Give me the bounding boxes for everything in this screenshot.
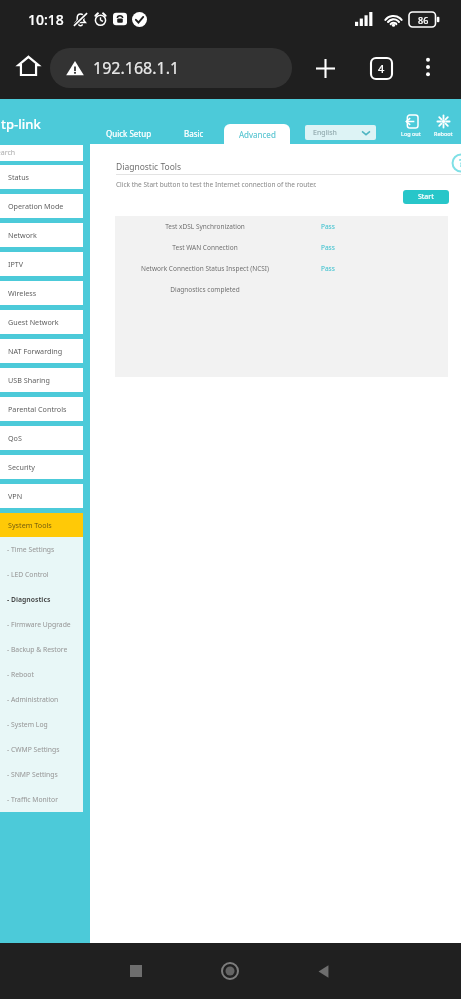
- button[interactable]: System Tools: [0, 513, 83, 537]
- button[interactable]: Basic: [178, 126, 210, 140]
- button[interactable]: Recent apps: [116, 951, 156, 991]
- staticText: Advanced: [239, 129, 276, 140]
- button[interactable]: Back: [303, 951, 343, 991]
- staticText: Pass: [321, 264, 335, 273]
- button[interactable]: Guest Network: [0, 310, 83, 334]
- staticText: Parental Controls: [8, 404, 67, 414]
- button[interactable]: - SNMP Settings: [0, 762, 83, 787]
- button[interactable]: NAT Forwarding: [0, 339, 83, 363]
- staticText: Status: [8, 172, 30, 182]
- button[interactable]: 192.168.1.1: [50, 48, 292, 88]
- staticText: 192.168.1.1: [93, 57, 180, 79]
- staticText: - Time Settings: [7, 545, 55, 554]
- staticText: - CWMP Settings: [7, 745, 60, 754]
- staticText: Start: [418, 192, 434, 202]
- staticText: - Backup & Restore: [7, 645, 68, 654]
- staticText: Security: [8, 462, 35, 472]
- staticText: System Tools: [8, 520, 52, 530]
- button[interactable]: IPTV: [0, 252, 83, 276]
- staticText: Search: [0, 148, 16, 158]
- button[interactable]: - Backup & Restore: [0, 637, 83, 662]
- button[interactable]: Tabs: [364, 51, 398, 85]
- button[interactable]: - LED Control: [0, 562, 83, 587]
- staticText: - Diagnostics: [7, 595, 51, 604]
- staticText: Diagnostics completed: [170, 285, 240, 294]
- staticText: Diagnostic Tools: [116, 161, 182, 173]
- staticText: - LED Control: [7, 570, 49, 579]
- button[interactable]: - Administration: [0, 687, 83, 712]
- staticText: 4: [378, 61, 385, 76]
- staticText: USB Sharing: [8, 375, 50, 385]
- button[interactable]: - Reboot: [0, 662, 83, 687]
- button[interactable]: - CWMP Settings: [0, 737, 83, 762]
- button[interactable]: Search: [0, 145, 83, 161]
- staticText: Basic: [184, 128, 204, 139]
- staticText: Pass: [321, 243, 335, 252]
- staticText: Operation Mode: [8, 201, 64, 211]
- button[interactable]: English: [305, 125, 376, 140]
- staticText: tp-link: [1, 115, 41, 133]
- staticText: VPN: [8, 491, 23, 501]
- button[interactable]: Home: [12, 50, 44, 82]
- button[interactable]: Start: [403, 190, 449, 204]
- button[interactable]: Log out: [396, 115, 426, 137]
- staticText: Log out: [401, 130, 421, 137]
- staticText: Test WAN Connection: [172, 243, 238, 252]
- button[interactable]: Network: [0, 223, 83, 247]
- button[interactable]: Parental Controls: [0, 397, 83, 421]
- button[interactable]: Home: [210, 951, 250, 991]
- button[interactable]: - System Log: [0, 712, 83, 737]
- staticText: Quick Setup: [106, 128, 152, 139]
- button[interactable]: - Firmware Upgrade: [0, 612, 83, 637]
- staticText: Network Connection Status Inspect (NCSI): [141, 264, 269, 273]
- button[interactable]: Security: [0, 455, 83, 479]
- staticText: - Firmware Upgrade: [7, 620, 71, 629]
- staticText: 86: [418, 14, 429, 26]
- staticText: ?: [459, 156, 461, 170]
- button[interactable]: - Traffic Monitor: [0, 787, 83, 812]
- button[interactable]: More options: [412, 51, 444, 83]
- staticText: Click the Start button to test the Inter…: [116, 180, 317, 189]
- button[interactable]: - Diagnostics: [0, 587, 83, 612]
- staticText: - SNMP Settings: [7, 770, 58, 779]
- staticText: - Reboot: [7, 670, 34, 679]
- button[interactable]: USB Sharing: [0, 368, 83, 392]
- button[interactable]: Reboot: [428, 115, 458, 137]
- button[interactable]: New tab: [308, 51, 342, 85]
- button[interactable]: QoS: [0, 426, 83, 450]
- staticText: Network: [8, 230, 37, 240]
- button[interactable]: Status: [0, 165, 83, 189]
- button[interactable]: Help: [452, 154, 461, 172]
- staticText: - Traffic Monitor: [7, 795, 58, 804]
- staticText: Pass: [321, 222, 335, 231]
- staticText: Reboot: [434, 130, 453, 137]
- button[interactable]: Advanced: [224, 124, 290, 144]
- staticText: QoS: [8, 433, 22, 443]
- button[interactable]: - Time Settings: [0, 537, 83, 562]
- staticText: Guest Network: [8, 317, 59, 327]
- button[interactable]: VPN: [0, 484, 83, 508]
- staticText: - System Log: [7, 720, 48, 729]
- staticText: English: [313, 128, 337, 138]
- button[interactable]: Wireless: [0, 281, 83, 305]
- staticText: 10:18: [28, 10, 64, 29]
- staticText: - Administration: [7, 695, 59, 704]
- button[interactable]: Quick Setup: [100, 126, 158, 140]
- staticText: Wireless: [8, 288, 37, 298]
- staticText: Test xDSL Synchronization: [165, 222, 245, 231]
- button[interactable]: Operation Mode: [0, 194, 83, 218]
- staticText: IPTV: [8, 259, 24, 269]
- staticText: NAT Forwarding: [8, 346, 63, 356]
